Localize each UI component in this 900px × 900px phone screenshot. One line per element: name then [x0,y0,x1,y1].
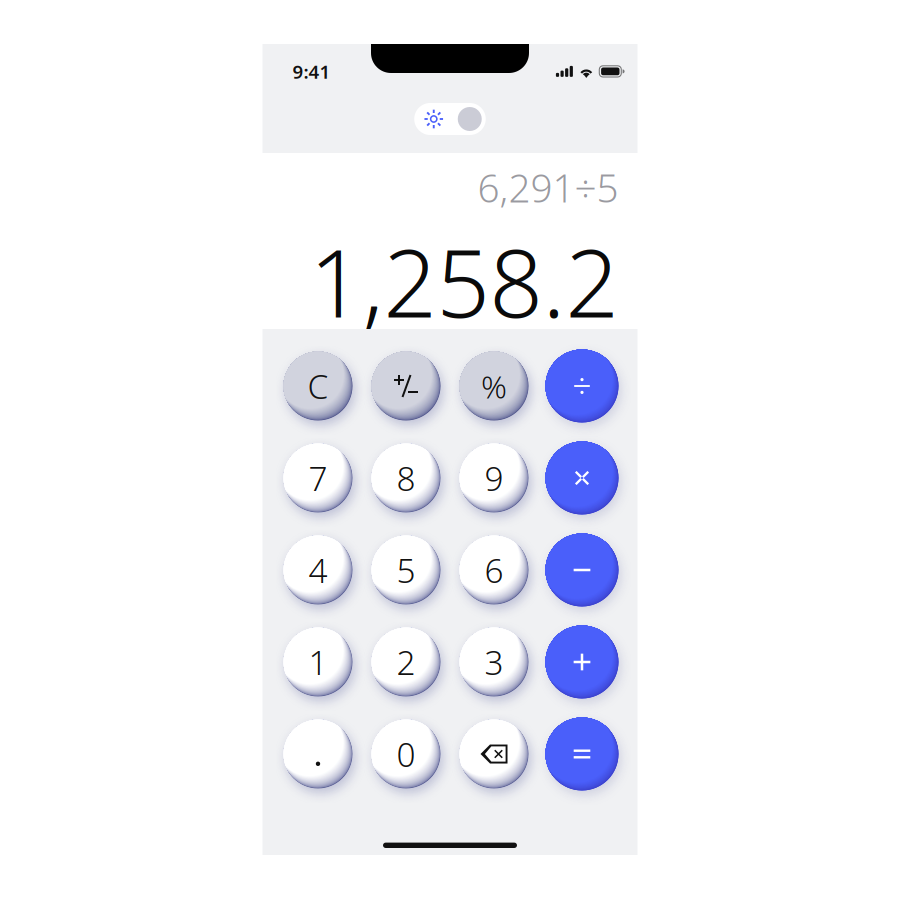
button[interactable] [538,432,626,524]
staticText: 3 [484,640,503,684]
staticText: 1,258.2 [309,219,618,343]
button[interactable]: 6 [450,524,538,616]
button[interactable]: C [274,340,362,432]
staticText: 2 [396,640,415,684]
staticText: 6 [484,548,503,592]
staticText: 0 [396,732,415,776]
staticText: 5 [396,548,415,592]
button[interactable]: Toggle appearance [414,103,486,135]
button[interactable]: 1 [274,616,362,708]
staticText: C [307,364,328,408]
button[interactable]: 3 [450,616,538,708]
staticText: % [481,365,507,407]
button[interactable] [538,340,626,432]
staticText: 7 [308,456,327,500]
button[interactable] [274,708,362,800]
staticText: 9:41 [292,59,330,84]
staticText: 4 [308,548,327,592]
staticText: 6,291÷5 [477,162,618,213]
button[interactable]: 9 [450,432,538,524]
button[interactable] [362,340,450,432]
staticText: 9 [484,456,503,500]
button[interactable] [450,708,538,800]
staticText: 8 [396,456,415,500]
button[interactable]: 7 [274,432,362,524]
staticText: 1 [308,640,327,684]
button[interactable] [538,708,626,800]
button[interactable]: 8 [362,432,450,524]
button[interactable]: 4 [274,524,362,616]
button[interactable]: 2 [362,616,450,708]
button[interactable]: 5 [362,524,450,616]
button[interactable]: % [450,340,538,432]
button[interactable]: 0 [362,708,450,800]
button[interactable] [538,616,626,708]
button[interactable] [538,524,626,616]
